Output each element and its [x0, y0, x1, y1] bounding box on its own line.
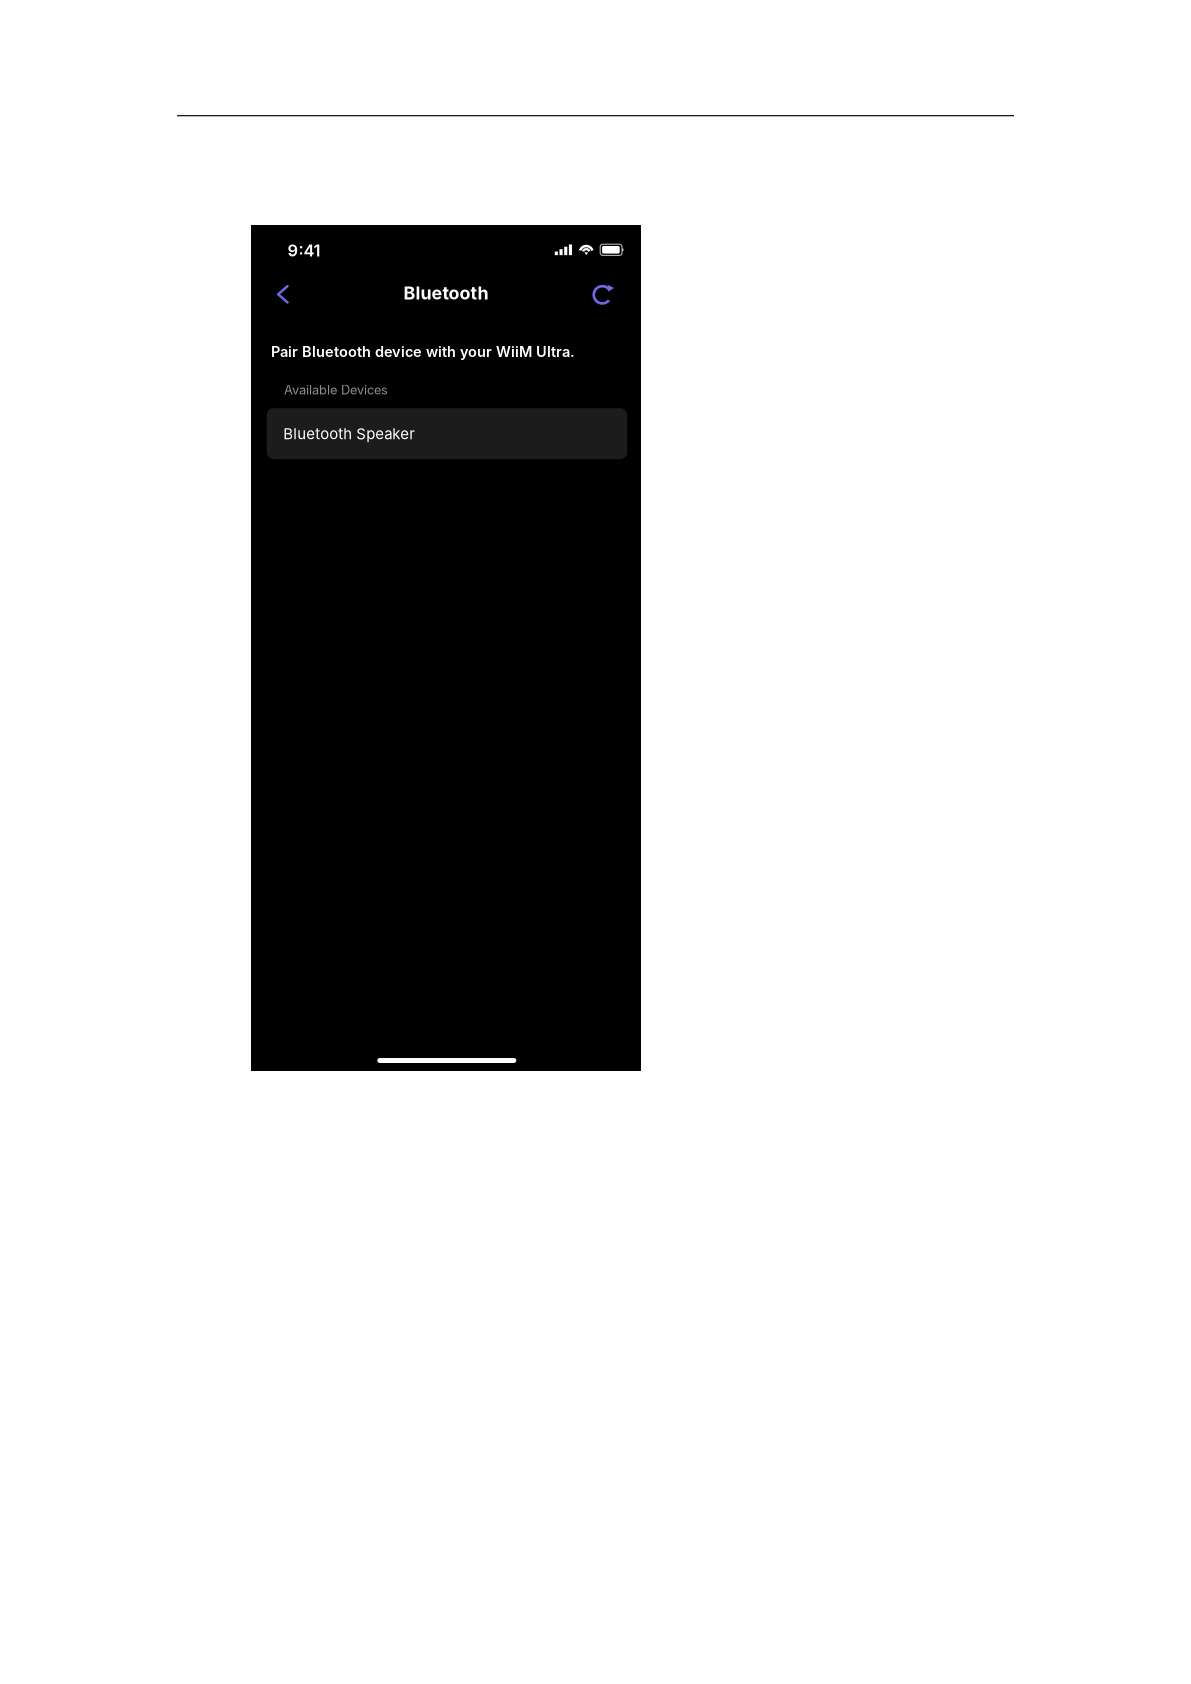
button[interactable]: Refresh	[583, 274, 623, 314]
staticText: Available Devices	[284, 382, 388, 398]
staticText: Bluetooth Speaker	[283, 425, 415, 443]
staticText: Bluetooth	[403, 282, 488, 304]
staticText: Pair Bluetooth device with your WiiM Ult…	[271, 343, 575, 361]
button[interactable]: Bluetooth Speaker	[267, 408, 627, 459]
button[interactable]: Back	[263, 274, 303, 314]
staticText: 9:41	[287, 241, 320, 261]
